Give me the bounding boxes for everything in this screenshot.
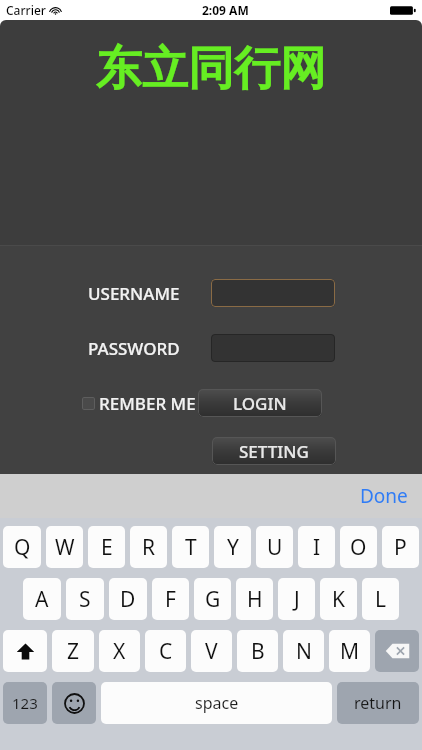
button[interactable]: S	[66, 578, 104, 620]
staticText: Y	[227, 533, 239, 562]
staticText: S	[79, 585, 91, 614]
button[interactable]: LOGIN	[198, 389, 322, 417]
staticText: X	[113, 637, 126, 666]
button[interactable]: REMBER ME	[82, 392, 196, 415]
button[interactable]: B	[237, 630, 278, 672]
staticText: H	[247, 585, 263, 614]
button[interactable]: 123	[3, 682, 47, 724]
staticText: 2:09 AM	[202, 2, 249, 18]
button[interactable]: Emoji keyboard	[52, 682, 96, 724]
staticText: U	[267, 533, 283, 562]
button[interactable]: F	[152, 578, 189, 620]
button[interactable]: T	[172, 526, 209, 568]
button[interactable]: H	[236, 578, 273, 620]
staticText: T	[185, 533, 197, 562]
button[interactable]	[211, 334, 335, 362]
staticText: G	[205, 585, 221, 614]
button[interactable]: M	[329, 630, 370, 672]
button[interactable]: Z	[52, 630, 94, 672]
staticText: PASSWORD	[88, 337, 208, 360]
button[interactable]: Backspace	[375, 630, 419, 672]
staticText: USERNAME	[88, 282, 208, 305]
staticText: P	[394, 533, 407, 562]
button[interactable]: V	[191, 630, 232, 672]
button[interactable]	[211, 279, 335, 307]
staticText: Q	[14, 533, 31, 562]
button[interactable]: O	[340, 526, 377, 568]
button[interactable]: R	[130, 526, 167, 568]
staticText: I	[313, 533, 321, 562]
staticText: L	[375, 585, 387, 614]
staticText: K	[332, 585, 345, 614]
staticText: 123	[12, 693, 38, 713]
staticText: B	[251, 637, 265, 666]
staticText: 东立同行网	[96, 40, 326, 98]
button[interactable]: C	[145, 630, 186, 672]
button[interactable]: P	[382, 526, 419, 568]
button[interactable]: X	[99, 630, 140, 672]
button[interactable]: U	[256, 526, 293, 568]
staticText: Z	[67, 637, 80, 666]
staticText: return	[354, 692, 402, 714]
button[interactable]: I	[298, 526, 335, 568]
button[interactable]: K	[320, 578, 357, 620]
staticText: LOGIN	[233, 392, 287, 415]
button[interactable]: G	[194, 578, 231, 620]
staticText: J	[294, 585, 300, 614]
staticText: M	[340, 637, 360, 666]
staticText: Done	[360, 483, 408, 509]
staticText: REMBER ME	[99, 392, 196, 415]
button[interactable]: Q	[3, 526, 41, 568]
button[interactable]: Y	[214, 526, 251, 568]
staticText: SETTING	[239, 440, 309, 463]
button[interactable]: space	[101, 682, 332, 724]
staticText: O	[350, 533, 367, 562]
button[interactable]: Done	[346, 477, 422, 515]
staticText: F	[165, 585, 176, 614]
button[interactable]: E	[88, 526, 125, 568]
staticText: A	[35, 585, 49, 614]
staticText: E	[101, 533, 113, 562]
staticText: N	[296, 637, 312, 666]
staticText: W	[55, 533, 75, 562]
button[interactable]: L	[362, 578, 399, 620]
button[interactable]: return	[337, 682, 419, 724]
button[interactable]: Shift	[3, 630, 47, 672]
staticText: D	[120, 585, 136, 614]
staticText: space	[195, 692, 239, 714]
staticText: V	[205, 637, 218, 666]
staticText: Carrier	[6, 2, 46, 18]
staticText: R	[142, 533, 156, 562]
button[interactable]: W	[46, 526, 83, 568]
button[interactable]: A	[23, 578, 61, 620]
staticText: C	[159, 637, 173, 666]
button[interactable]: D	[109, 578, 147, 620]
button[interactable]: N	[283, 630, 324, 672]
button[interactable]: J	[278, 578, 315, 620]
button[interactable]: SETTING	[212, 437, 336, 465]
